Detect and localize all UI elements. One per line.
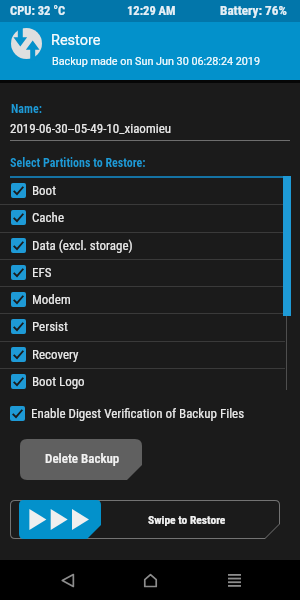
button[interactable]: Back (47, 560, 87, 600)
staticText: Enable Digest Verification of Backup Fil… (31, 406, 245, 421)
staticText: 2019-06-30--05-49-10_xiaomieu (10, 121, 172, 136)
staticText: Restore (51, 32, 101, 49)
staticText: Boot Logo (32, 374, 85, 389)
button[interactable]: Boot (0, 177, 300, 204)
staticText: Swipe to Restore (148, 513, 226, 526)
staticText: Select Partitions to Restore: (10, 156, 146, 170)
button[interactable]: Enable Digest Verification of Backup Fil… (0, 404, 245, 422)
button[interactable]: Data (excl. storage) (0, 232, 300, 259)
staticText: Delete Backup (45, 451, 120, 466)
button[interactable]: Home (130, 560, 170, 600)
button[interactable]: Delete Backup (20, 439, 142, 480)
button[interactable]: Cache (0, 204, 300, 231)
button[interactable]: Swipe to Restore (10, 500, 280, 539)
staticText: Backup made on Sun Jun 30 06:28:24 2019 (52, 55, 261, 68)
button[interactable]: Persist (0, 313, 300, 340)
staticText: Data (excl. storage) (32, 238, 133, 253)
staticText: Cache (32, 210, 64, 225)
button[interactable]: Boot Logo (0, 368, 300, 395)
staticText: 12:29 AM (127, 3, 176, 18)
staticText: Battery: 76% (220, 3, 287, 18)
staticText: Persist (32, 319, 68, 334)
staticText: CPU: 32 °C (10, 3, 66, 18)
button[interactable]: EFS (0, 259, 300, 286)
staticText: EFS (32, 265, 52, 280)
button[interactable]: Recent apps (214, 560, 254, 600)
staticText: Boot (32, 183, 56, 198)
button[interactable]: Recovery (0, 341, 300, 368)
staticText: Recovery (32, 347, 79, 362)
staticText: Name: (11, 102, 42, 116)
staticText: Modem (32, 292, 71, 307)
button[interactable]: Modem (0, 286, 300, 313)
